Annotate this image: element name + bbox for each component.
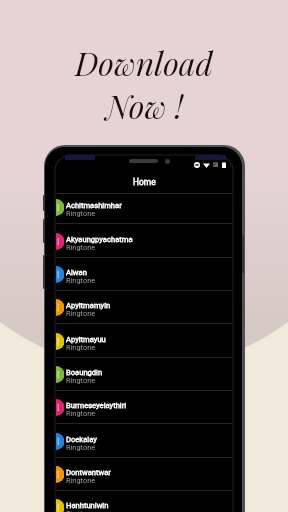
staticText: Ringtone (66, 343, 96, 352)
staticText: Ringtone (66, 309, 96, 318)
staticText: Apyitmamyin (66, 301, 111, 310)
button[interactable]: Dontwantwar (56, 458, 232, 491)
staticText: Ringtone (66, 376, 96, 385)
staticText: Akyaungpyachatma (66, 235, 133, 244)
staticText: Ringtone (66, 276, 96, 285)
staticText: Ringtone (66, 476, 96, 485)
staticText: Achitmashimhar (66, 201, 122, 210)
button[interactable]: Doekalay (56, 425, 232, 458)
staticText: Doekalay (66, 435, 97, 444)
staticText: Dontwantwar (66, 468, 111, 477)
button[interactable]: Burmeseyelaythiri (56, 391, 232, 424)
staticText: Now ! (106, 84, 183, 127)
staticText: Ringtone (66, 509, 96, 512)
button[interactable]: Apyitmayuu (56, 325, 232, 358)
button[interactable]: Boaungdin (56, 358, 232, 391)
button[interactable]: Home (56, 169, 232, 194)
staticText: Ringtone (66, 243, 96, 252)
staticText: Ringtone (66, 443, 96, 452)
staticText: Hanhtunlwin (66, 501, 109, 510)
staticText: Alwan (66, 268, 87, 277)
button[interactable]: Alwan (56, 258, 232, 291)
button[interactable]: Akyaungpyachatma (56, 225, 232, 258)
staticText: Ringtone (66, 209, 96, 218)
staticText: Apyitmayuu (66, 335, 106, 344)
staticText: Home (133, 177, 156, 187)
staticText: Ringtone (66, 409, 96, 418)
staticText: Boaungdin (66, 368, 103, 377)
button[interactable]: Achitmashimhar (56, 191, 232, 224)
button[interactable]: Apyitmamyin (56, 291, 232, 324)
staticText: Download (75, 41, 213, 84)
button[interactable]: Hanhtunlwin (56, 491, 232, 512)
staticText: Burmeseyelaythiri (66, 401, 127, 410)
